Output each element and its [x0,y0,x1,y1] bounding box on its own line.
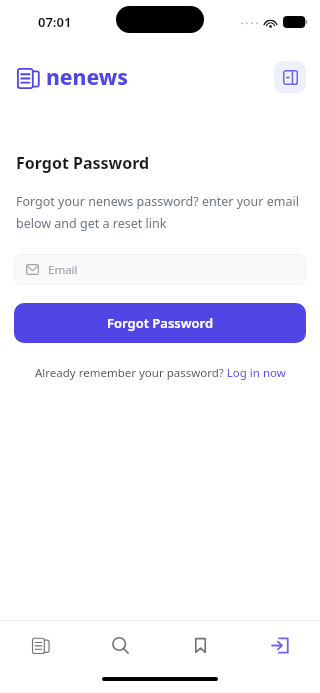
staticText: Forgot Password [107,314,214,332]
button[interactable]: nenews [16,63,128,92]
staticText: 07:01 [38,13,72,31]
button[interactable]: Search [80,621,160,669]
staticText: Email [48,262,78,278]
staticText: Forgot your nenews password? enter your … [16,193,299,232]
button[interactable]: Toggle sidebar [274,61,306,93]
staticText: Forgot Password [16,152,150,174]
staticText: Already remember your password? Log in n… [35,365,286,381]
staticText: nenews [46,63,128,92]
button[interactable]: Forgot Password [14,303,306,343]
button[interactable]: News [0,621,80,669]
button[interactable]: Email [14,254,306,285]
button[interactable]: Already remember your password? Log in n… [14,365,306,381]
button[interactable]: Bookmarks [160,621,240,669]
button[interactable]: Log in [240,621,320,669]
